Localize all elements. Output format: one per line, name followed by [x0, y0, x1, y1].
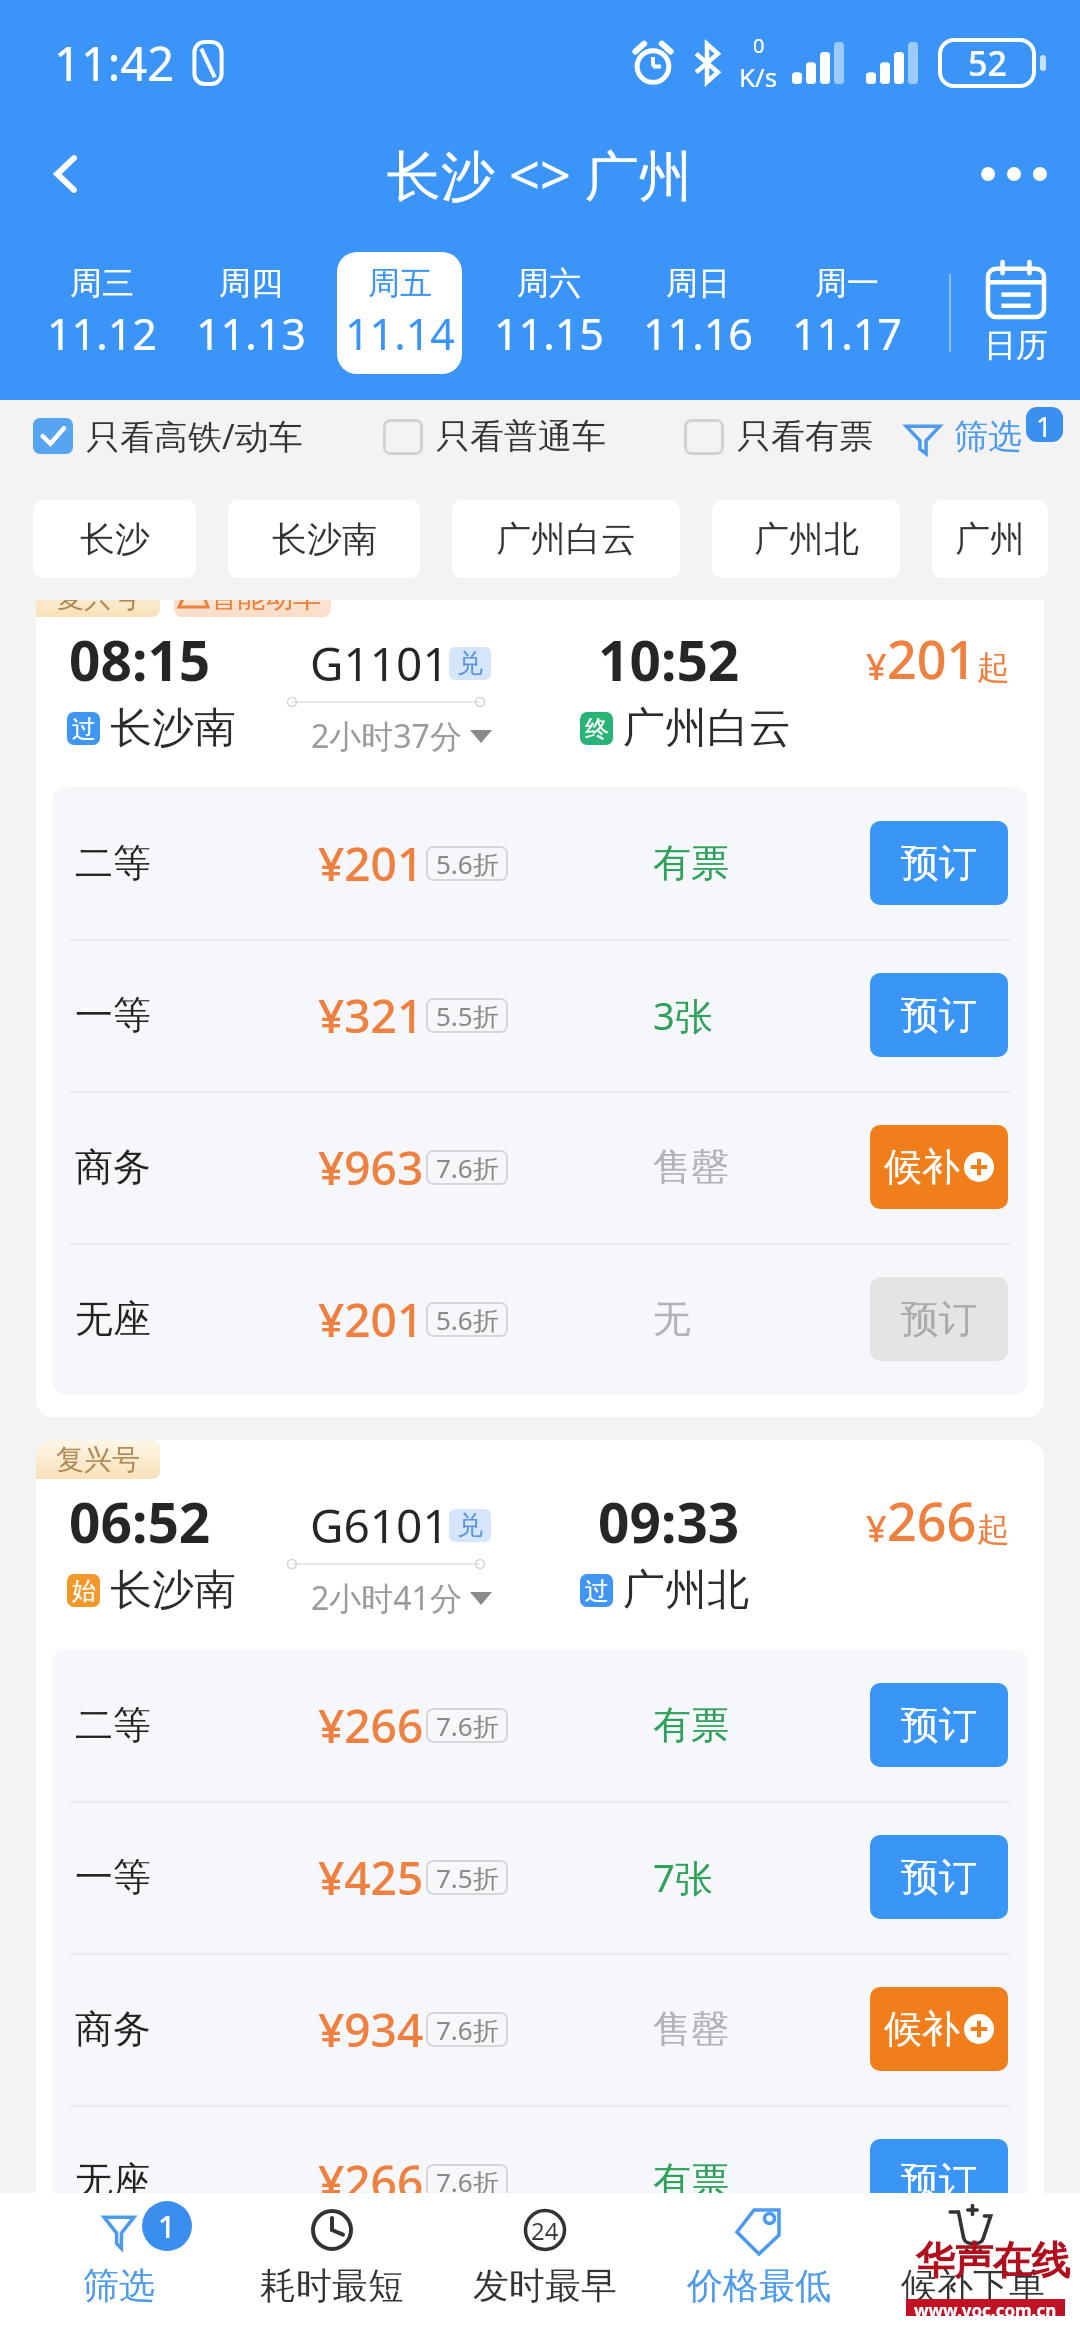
staticText: 一等: [75, 1853, 151, 1901]
staticText: 无座: [75, 1295, 151, 1343]
staticText: 二等: [75, 839, 151, 887]
button[interactable]: [36, 578, 1044, 1417]
staticText: 无: [653, 1295, 691, 1343]
button[interactable]: Back: [34, 142, 98, 206]
button[interactable]: 周五: [337, 252, 462, 374]
button[interactable]: 候补: [870, 1125, 1008, 1209]
staticText: 售罄: [653, 2005, 729, 2053]
staticText: 长沙 <> 广州: [387, 137, 693, 211]
staticText: 5.5折: [436, 998, 499, 1033]
button[interactable]: 长沙南: [228, 500, 420, 578]
button[interactable]: 日历: [951, 230, 1080, 395]
button[interactable]: 无座: [52, 1243, 1028, 1395]
staticText: ¥201: [318, 832, 424, 895]
staticText: 兑: [457, 1509, 483, 1542]
staticText: 筛选: [954, 415, 1022, 458]
staticText: 24: [531, 2214, 559, 2247]
button[interactable]: 预订: [870, 2139, 1008, 2223]
button[interactable]: More options: [978, 138, 1050, 210]
staticText: 候补下单: [901, 2263, 1045, 2308]
staticText: 售罄: [653, 1143, 729, 1191]
staticText: ¥266: [318, 1694, 424, 1757]
button[interactable]: 筛选: [12, 2193, 225, 2331]
staticText: 一等: [75, 991, 151, 1039]
button[interactable]: 预订: [870, 821, 1008, 905]
staticText: 候补: [884, 1143, 960, 1191]
button[interactable]: 广州: [932, 500, 1048, 578]
staticText: 复兴号: [56, 1442, 140, 1477]
button[interactable]: 只看有票: [684, 415, 873, 458]
button[interactable]: 24: [438, 2193, 652, 2331]
staticText: 7.6折: [436, 2164, 499, 2199]
button[interactable]: 二等: [52, 787, 1028, 939]
button[interactable]: 周日: [635, 252, 760, 374]
button[interactable]: 无座: [52, 2105, 1028, 2257]
staticText: 筛选: [83, 2263, 155, 2308]
button[interactable]: 预订: [870, 1277, 1008, 1361]
staticText: 7.5折: [436, 1860, 499, 1895]
button[interactable]: 周三: [39, 252, 164, 374]
staticText: 有票: [653, 1701, 729, 1749]
staticText: 商务: [75, 2005, 151, 2053]
staticText: 5.6折: [436, 846, 499, 881]
button[interactable]: 耗时最短: [225, 2193, 438, 2331]
button[interactable]: 长沙: [33, 500, 196, 578]
staticText: 1: [1036, 407, 1053, 442]
staticText: 起: [977, 647, 1010, 689]
staticText: 发时最早: [473, 2263, 617, 2308]
staticText: 终: [585, 714, 609, 744]
staticText: 周六: [517, 263, 581, 303]
staticText: ¥321: [318, 984, 424, 1047]
button[interactable]: 候补: [870, 1987, 1008, 2071]
staticText: 价格最低: [687, 2263, 831, 2308]
button[interactable]: 周一: [784, 252, 909, 374]
staticText: 有票: [653, 839, 729, 887]
staticText: 预订: [901, 1853, 977, 1901]
button[interactable]: 二等: [52, 1649, 1028, 1801]
staticText: 始: [72, 1576, 96, 1606]
button[interactable]: 筛选: [904, 415, 1022, 458]
staticText: G6101: [310, 1494, 449, 1557]
button[interactable]: 只看高铁/动车: [33, 413, 303, 459]
staticText: 11.14: [345, 304, 455, 363]
staticText: 周日: [666, 263, 730, 303]
staticText: 广州白云: [623, 702, 791, 755]
button[interactable]: 价格最低: [652, 2193, 866, 2331]
staticText: ¥963: [318, 1136, 424, 1199]
staticText: 06:52: [69, 1484, 211, 1559]
staticText: 预订: [901, 2157, 977, 2205]
button[interactable]: 预订: [870, 973, 1008, 1057]
staticText: 广州北: [754, 517, 859, 561]
staticText: ¥425: [318, 1846, 424, 1909]
button[interactable]: 商务: [52, 1953, 1028, 2105]
button[interactable]: 预订: [870, 1835, 1008, 1919]
button[interactable]: [36, 1440, 1044, 2279]
staticText: 11:42: [54, 31, 175, 95]
staticText: 周五: [368, 263, 432, 303]
button[interactable]: 广州白云: [452, 500, 680, 578]
staticText: 7.6折: [436, 1708, 499, 1743]
staticText: 周一: [815, 263, 879, 303]
button[interactable]: 周四: [188, 252, 313, 374]
staticText: 兑: [457, 647, 483, 680]
button[interactable]: 候补下单: [866, 2193, 1080, 2331]
staticText: 起: [977, 1509, 1010, 1551]
button[interactable]: 一等: [52, 939, 1028, 1091]
staticText: 周四: [219, 263, 283, 303]
staticText: 只看有票: [737, 415, 873, 458]
staticText: 复兴号: [56, 580, 140, 615]
staticText: 5.6折: [436, 1302, 499, 1337]
button[interactable]: 只看普通车: [383, 415, 606, 458]
staticText: 2小时37分: [311, 714, 462, 758]
button[interactable]: 商务: [52, 1091, 1028, 1243]
staticText: 09:33: [598, 1484, 740, 1559]
staticText: 长沙南: [110, 702, 236, 755]
staticText: 0: [753, 32, 765, 59]
button[interactable]: 广州北: [712, 500, 900, 578]
button[interactable]: 周六: [486, 252, 611, 374]
button[interactable]: 一等: [52, 1801, 1028, 1953]
button[interactable]: 预订: [870, 1683, 1008, 1767]
staticText: 候补: [884, 2005, 960, 2053]
staticText: 11.15: [494, 304, 604, 363]
staticText: 只看普通车: [436, 415, 606, 458]
